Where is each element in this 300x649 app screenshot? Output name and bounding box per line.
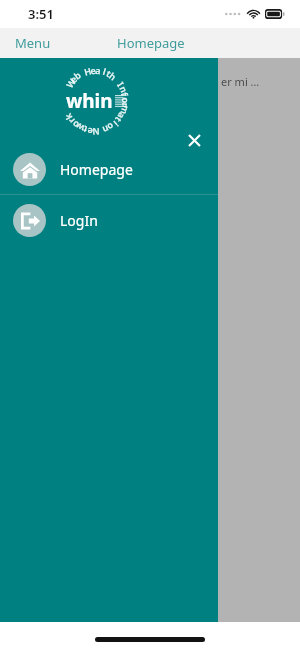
staticText: m xyxy=(118,104,133,116)
staticText: 3:51 xyxy=(28,5,54,23)
staticText: w xyxy=(74,121,86,135)
button[interactable]: Homepage xyxy=(112,30,190,56)
staticText: e xyxy=(86,126,94,138)
staticText: Homepage xyxy=(117,34,185,52)
staticText: b xyxy=(71,68,83,82)
staticText: N xyxy=(92,126,100,138)
staticText: f xyxy=(119,91,131,97)
staticText: r xyxy=(120,102,132,108)
staticText: e xyxy=(90,64,96,76)
staticText: H xyxy=(83,64,92,78)
button[interactable]: Close menu xyxy=(180,126,208,154)
staticText: t xyxy=(81,124,89,136)
staticText: e xyxy=(67,73,79,85)
staticText: whin xyxy=(66,88,113,114)
staticText: Menu xyxy=(15,34,51,52)
button[interactable]: Homepage xyxy=(0,144,218,194)
button[interactable]: LogIn xyxy=(0,195,218,245)
staticText: I xyxy=(115,79,127,89)
staticText: LogIn xyxy=(60,211,98,230)
staticText: t xyxy=(113,115,125,125)
staticText: o xyxy=(69,118,81,132)
staticText: er mi … xyxy=(221,74,260,89)
staticText: a xyxy=(115,110,129,121)
staticText: o xyxy=(120,97,132,103)
staticText: l xyxy=(101,65,108,77)
staticText: o xyxy=(105,120,117,134)
staticText: n xyxy=(117,84,131,94)
staticText: k xyxy=(61,111,75,123)
staticText: Homepage xyxy=(60,160,133,179)
staticText: r xyxy=(65,116,77,126)
staticText: i xyxy=(111,118,122,129)
staticText: a xyxy=(94,64,102,76)
staticText: t xyxy=(104,67,113,79)
staticText: h xyxy=(107,69,119,83)
button[interactable]: Menu xyxy=(0,30,61,56)
staticText: W xyxy=(63,76,78,90)
staticText: n xyxy=(101,123,111,137)
